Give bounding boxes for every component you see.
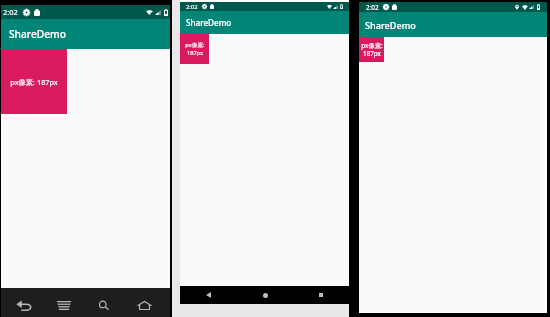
button[interactable]: Home bbox=[237, 286, 293, 304]
staticText: 2:02 bbox=[366, 3, 379, 12]
button[interactable]: Back bbox=[180, 286, 237, 304]
staticText: ShareDemo bbox=[365, 19, 416, 31]
button[interactable]: ShareDemo bbox=[359, 12, 547, 37]
button[interactable]: Menu bbox=[44, 293, 84, 317]
button[interactable]: Recents bbox=[293, 286, 349, 304]
staticText: px像素: 187px bbox=[185, 41, 205, 57]
staticText: px像素: 187px bbox=[10, 77, 58, 87]
staticText: ShareDemo bbox=[186, 17, 232, 28]
staticText: ShareDemo bbox=[9, 27, 66, 41]
button[interactable]: Search bbox=[84, 293, 124, 317]
staticText: 2:02 bbox=[3, 7, 18, 17]
button[interactable]: Home bbox=[124, 293, 164, 317]
button[interactable]: ShareDemo bbox=[180, 11, 349, 34]
staticText: px像素: 187px bbox=[361, 41, 383, 58]
button[interactable]: Back bbox=[4, 293, 44, 317]
button[interactable]: ShareDemo bbox=[1, 19, 170, 49]
staticText: 2:02 bbox=[186, 3, 198, 11]
